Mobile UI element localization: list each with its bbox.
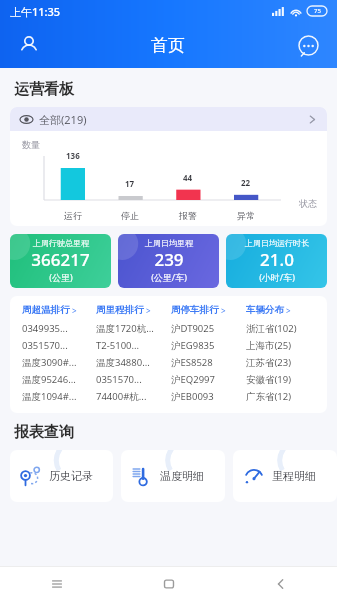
- button[interactable]: 上周行驶总里程: [10, 234, 111, 288]
- button[interactable]: 历史记录: [10, 450, 113, 502]
- button[interactable]: 周超温排行: [22, 304, 77, 316]
- staticText: 沪EG9835: [171, 339, 215, 352]
- staticText: (公里/车): [151, 271, 187, 283]
- staticText: 75: [314, 7, 321, 15]
- staticText: 0351570...: [22, 339, 68, 352]
- staticText: (公里): [49, 271, 73, 283]
- staticText: 沪EB0093: [171, 390, 214, 403]
- staticText: 温度3090#...: [22, 356, 77, 369]
- staticText: 状态: [299, 198, 317, 209]
- staticText: 22: [241, 177, 251, 188]
- button[interactable]: Recents: [0, 567, 113, 600]
- button[interactable]: Messages: [293, 30, 323, 60]
- staticText: >: [72, 305, 77, 316]
- staticText: 0349935...: [22, 322, 68, 335]
- button[interactable]: 车辆分布: [246, 304, 291, 316]
- staticText: 周停车排行: [171, 304, 219, 316]
- staticText: 报表查询: [14, 423, 74, 442]
- staticText: 上午11:35: [10, 4, 61, 19]
- staticText: 21.0: [260, 248, 294, 271]
- staticText: 历史记录: [49, 469, 93, 483]
- staticText: 上周日均运行时长: [245, 238, 309, 248]
- button[interactable]: 全部(219): [10, 107, 327, 131]
- staticText: 上海市(25): [246, 339, 292, 352]
- staticText: 沪EQ2997: [171, 373, 215, 386]
- staticText: 安徽省(19): [246, 373, 292, 386]
- staticText: >: [146, 305, 151, 316]
- staticText: 温度1094#...: [22, 390, 77, 403]
- staticText: 239: [154, 248, 184, 271]
- staticText: 366217: [31, 248, 90, 271]
- staticText: 车辆分布: [246, 304, 284, 316]
- staticText: 温度明细: [160, 469, 204, 483]
- button[interactable]: 里程明细: [233, 450, 337, 502]
- staticText: 44: [183, 172, 193, 183]
- staticText: T2-5100...: [96, 339, 140, 352]
- staticText: 首页: [151, 35, 185, 56]
- staticText: 报警: [179, 210, 197, 221]
- staticText: 江苏省(23): [246, 356, 292, 369]
- staticText: 17: [125, 178, 135, 189]
- button[interactable]: Home: [113, 567, 225, 600]
- staticText: 上周日均里程: [145, 238, 193, 248]
- staticText: 运营看板: [14, 80, 74, 99]
- staticText: 里程明细: [272, 469, 316, 483]
- staticText: 停止: [121, 210, 139, 221]
- staticText: 上周行驶总里程: [33, 238, 89, 248]
- staticText: 沪ES8528: [171, 356, 213, 369]
- staticText: 沪DT9025: [171, 322, 215, 335]
- staticText: 周超温排行: [22, 304, 70, 316]
- button[interactable]: 上周日均运行时长: [226, 234, 327, 288]
- staticText: >: [221, 305, 226, 316]
- staticText: 异常: [237, 210, 255, 221]
- button[interactable]: Profile: [14, 30, 44, 60]
- button[interactable]: Back: [225, 567, 337, 600]
- staticText: 0351570...: [96, 373, 142, 386]
- staticText: 136: [66, 150, 80, 161]
- staticText: 全部(219): [39, 112, 87, 127]
- staticText: >: [286, 305, 291, 316]
- button[interactable]: 周停车排行: [171, 304, 226, 316]
- staticText: 温度1720杭...: [96, 322, 154, 335]
- button[interactable]: 温度明细: [121, 450, 225, 502]
- staticText: (小时/车): [259, 271, 295, 283]
- staticText: 74400#杭...: [96, 390, 147, 403]
- staticText: 浙江省(102): [246, 322, 297, 335]
- button[interactable]: 上周日均里程: [118, 234, 219, 288]
- staticText: 广东省(12): [246, 390, 292, 403]
- staticText: 温度95246...: [22, 373, 76, 386]
- staticText: 运行: [64, 210, 82, 221]
- staticText: 周里程排行: [96, 304, 144, 316]
- staticText: 数量: [22, 139, 40, 150]
- button[interactable]: 周里程排行: [96, 304, 151, 316]
- staticText: 温度34880...: [96, 356, 150, 369]
